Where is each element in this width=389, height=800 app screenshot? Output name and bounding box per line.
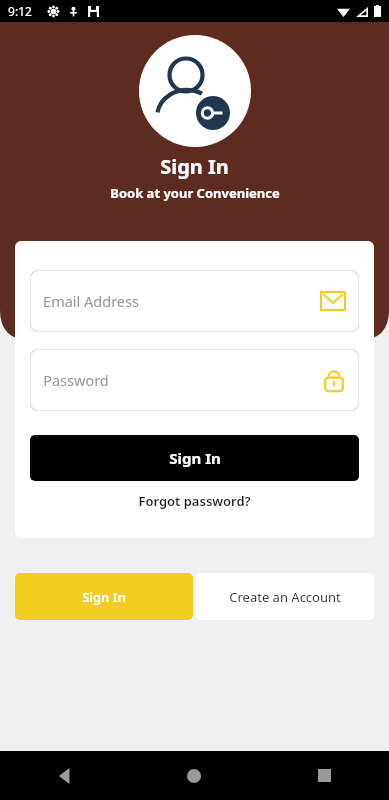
staticText: 9:12 <box>8 3 32 19</box>
button[interactable]: Sign In <box>15 573 193 620</box>
button[interactable]: Password <box>30 349 359 411</box>
staticText: Sign In <box>169 448 221 468</box>
staticText: Sign In <box>160 153 229 180</box>
button[interactable]: Forgot password? <box>30 481 359 521</box>
staticText: Sign In <box>82 588 126 606</box>
staticText: Create an Account <box>229 588 341 606</box>
staticText: Email Address <box>43 291 139 311</box>
staticText: Password <box>43 370 109 390</box>
button[interactable]: Recent apps <box>259 751 389 800</box>
button[interactable]: Email Address <box>30 270 359 332</box>
button[interactable]: Back <box>0 751 129 800</box>
staticText: Book at your Convenience <box>110 184 280 202</box>
staticText: Forgot password? <box>138 492 251 510</box>
button[interactable]: Create an Account <box>196 573 374 620</box>
button[interactable]: Home <box>129 751 259 800</box>
button[interactable]: Sign In <box>30 435 359 481</box>
